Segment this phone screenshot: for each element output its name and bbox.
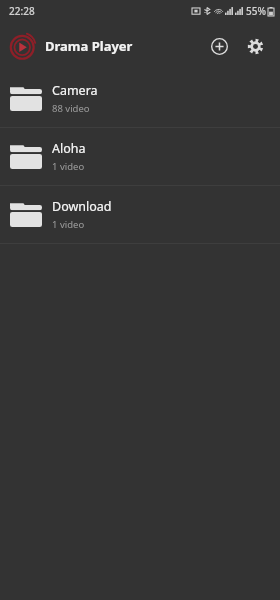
- button[interactable]: Aloha: [0, 128, 280, 185]
- staticText: 88 video: [52, 102, 90, 115]
- button[interactable]: Add folder: [202, 29, 236, 63]
- button[interactable]: Download: [0, 186, 280, 243]
- staticText: 1 video: [52, 160, 85, 173]
- staticText: Download: [52, 198, 112, 215]
- staticText: 22:28: [9, 4, 35, 18]
- button[interactable]: Camera: [0, 70, 280, 127]
- staticText: 1 video: [52, 218, 85, 231]
- button[interactable]: Drama Player: [10, 33, 133, 59]
- staticText: 55%: [246, 4, 266, 18]
- staticText: Drama Player: [45, 37, 133, 55]
- staticText: Camera: [52, 82, 98, 99]
- staticText: Aloha: [52, 140, 86, 157]
- button[interactable]: Settings: [238, 29, 272, 63]
